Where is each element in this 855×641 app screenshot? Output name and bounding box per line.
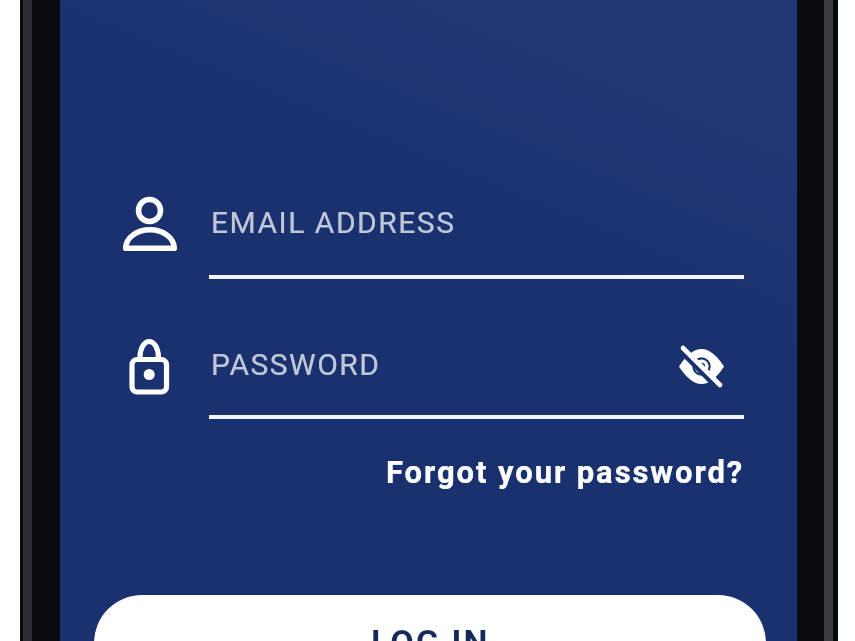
button[interactable]: PASSWORD [115,330,745,398]
button[interactable]: EMAIL ADDRESS [115,185,745,260]
staticText: PASSWORD [211,347,381,382]
staticText: LOG IN [371,622,490,641]
staticText: EMAIL ADDRESS [211,205,456,240]
staticText: Forgot your password? [386,454,745,490]
button[interactable] [671,336,733,398]
button[interactable]: LOG IN [94,595,766,641]
button[interactable]: Forgot your password? [345,448,745,496]
